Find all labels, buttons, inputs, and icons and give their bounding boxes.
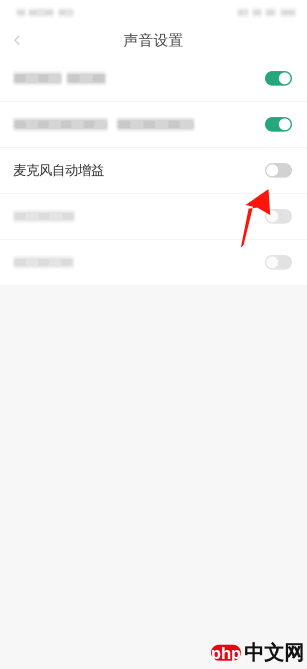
button[interactable]: 麦克风自动增益 xyxy=(0,148,307,193)
staticText: 声音设置 xyxy=(123,31,183,49)
staticText: 麦克风自动增益 xyxy=(13,162,104,179)
staticText: 中文网 xyxy=(244,640,304,665)
button[interactable] xyxy=(0,194,307,239)
button[interactable] xyxy=(0,56,307,101)
button[interactable] xyxy=(0,240,307,285)
button[interactable] xyxy=(0,102,307,147)
button[interactable]: Back xyxy=(0,25,48,56)
staticText: php xyxy=(211,642,241,663)
